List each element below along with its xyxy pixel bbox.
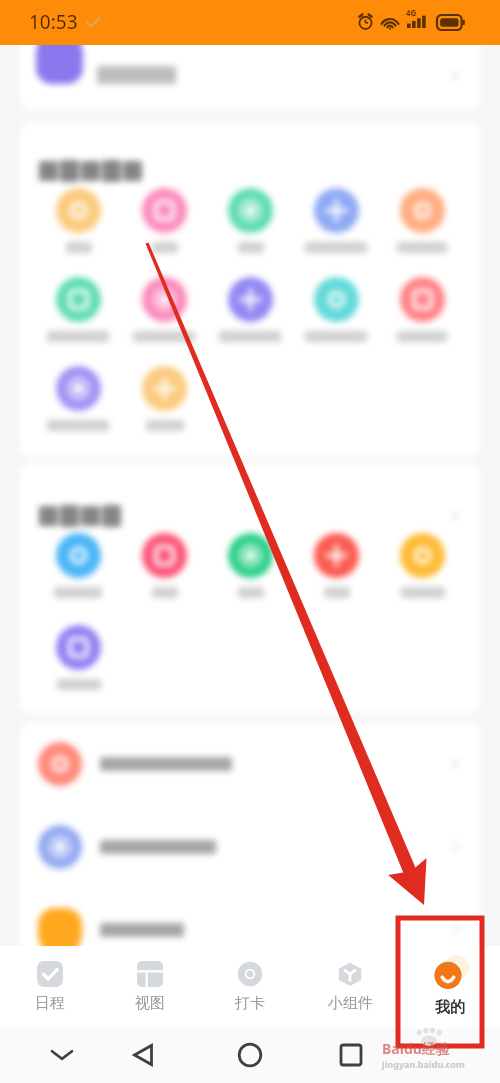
staticText: 10:53 [29, 9, 78, 35]
button[interactable] [219, 277, 281, 342]
button[interactable]: 视图 [100, 953, 200, 1021]
button[interactable] [54, 533, 102, 598]
button[interactable] [20, 45, 480, 110]
staticText: 打卡 [235, 994, 265, 1013]
button[interactable] [133, 277, 195, 342]
button[interactable] [56, 188, 101, 253]
button[interactable] [142, 188, 187, 253]
staticText: 我的 [435, 998, 465, 1017]
button[interactable] [56, 625, 101, 690]
button[interactable] [20, 888, 480, 946]
button[interactable] [400, 533, 445, 598]
button[interactable] [47, 366, 109, 431]
button[interactable]: 小组件 [300, 953, 400, 1021]
button[interactable]: 日程 [0, 953, 100, 1021]
button[interactable] [228, 533, 273, 598]
button[interactable] [305, 277, 367, 342]
button[interactable] [47, 277, 109, 342]
button[interactable] [228, 188, 273, 253]
staticText: jingyan.baidu.com [382, 1058, 465, 1070]
staticText: 视图 [135, 994, 165, 1013]
button[interactable] [142, 366, 187, 431]
staticText: 日程 [35, 994, 65, 1013]
button[interactable]: Recents [327, 1031, 375, 1079]
button[interactable] [20, 805, 480, 888]
staticText: 4G [406, 7, 417, 18]
button[interactable] [142, 533, 187, 598]
button[interactable]: Home [226, 1031, 274, 1079]
button[interactable] [397, 188, 447, 253]
button[interactable]: 我的 [400, 949, 500, 1025]
button[interactable]: 打卡 [200, 953, 300, 1021]
button[interactable] [397, 277, 447, 342]
button[interactable] [314, 533, 359, 598]
button[interactable] [305, 188, 367, 253]
button[interactable]: Back [119, 1031, 167, 1079]
staticText: Baidu经验 [382, 1039, 450, 1058]
button[interactable]: Hide keyboard [38, 1031, 86, 1079]
staticText: 小组件 [328, 994, 373, 1013]
button[interactable] [20, 722, 480, 805]
